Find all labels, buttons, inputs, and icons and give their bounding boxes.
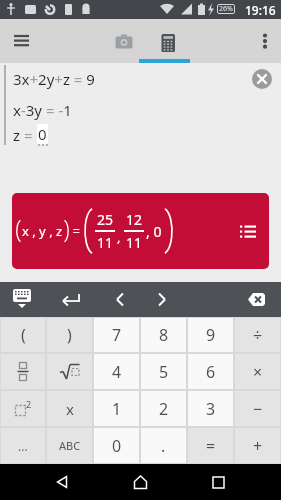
button[interactable] — [252, 69, 272, 89]
staticText: z = — [13, 125, 37, 145]
button[interactable]: 9 — [187, 317, 234, 353]
button[interactable]: × — [234, 353, 281, 390]
button[interactable] — [46, 353, 93, 390]
staticText: 0 — [38, 124, 47, 144]
staticText: × — [253, 361, 263, 383]
button[interactable] — [0, 282, 46, 317]
button[interactable]: 6 — [187, 353, 234, 390]
button[interactable]: = — [187, 427, 234, 464]
staticText: ABC — [59, 438, 81, 453]
staticText: . — [161, 435, 166, 457]
staticText: = — [206, 435, 216, 457]
staticText: ) — [67, 324, 72, 346]
staticText: x — [66, 399, 74, 419]
button[interactable] — [52, 282, 90, 317]
button[interactable] — [0, 353, 46, 390]
button[interactable]: + — [234, 427, 281, 464]
button[interactable]: . — [140, 427, 187, 464]
staticText: 11 — [97, 233, 114, 252]
staticText: 6 — [206, 361, 216, 383]
button[interactable] — [0, 19, 44, 63]
staticText: 11 — [126, 233, 143, 252]
button[interactable]: − — [234, 390, 281, 427]
staticText: 12 — [126, 210, 143, 229]
staticText: ... — [18, 438, 28, 454]
button[interactable]: 5 — [140, 353, 187, 390]
staticText: ( — [21, 324, 26, 346]
button[interactable]: x , y , z — [12, 193, 269, 269]
button[interactable]: 4 — [93, 353, 140, 390]
staticText: 4 — [112, 361, 122, 383]
button[interactable] — [241, 19, 281, 63]
staticText: 3x+2y+z = 9 — [13, 69, 95, 89]
button[interactable]: 3 — [187, 390, 234, 427]
button[interactable]: 7 — [93, 317, 140, 353]
button[interactable] — [100, 19, 148, 63]
staticText: 5 — [159, 361, 169, 383]
staticText: x-3y = -1 — [13, 100, 72, 120]
button[interactable]: 8 — [140, 317, 187, 353]
staticText: 2 — [159, 398, 169, 420]
button[interactable] — [235, 282, 281, 317]
staticText: x , y , z — [22, 222, 63, 240]
button[interactable] — [100, 282, 138, 317]
button[interactable]: 1 — [93, 390, 140, 427]
button[interactable]: ( — [0, 317, 46, 353]
button[interactable] — [199, 464, 237, 500]
staticText: , 0 — [146, 222, 162, 241]
staticText: + — [253, 435, 263, 457]
button[interactable]: 2 — [0, 390, 46, 427]
staticText: 1 — [112, 398, 122, 420]
button[interactable]: ÷ — [234, 317, 281, 353]
button[interactable] — [121, 464, 159, 500]
staticText: 7 — [112, 324, 122, 346]
button[interactable]: ABC — [46, 427, 93, 464]
button[interactable]: 2 — [140, 390, 187, 427]
staticText: 9 — [206, 324, 216, 346]
button[interactable] — [44, 464, 82, 500]
staticText: 19:16 — [245, 2, 276, 18]
staticText: , — [117, 228, 121, 246]
staticText: 25 — [97, 210, 114, 229]
button[interactable] — [143, 282, 181, 317]
staticText: 2 — [26, 398, 32, 410]
button[interactable]: 0 — [93, 427, 140, 464]
button[interactable] — [144, 19, 192, 63]
staticText: 3 — [206, 398, 216, 420]
staticText: 0 — [112, 435, 122, 457]
staticText: 26% — [219, 4, 233, 14]
staticText: − — [253, 398, 263, 420]
button[interactable]: x — [46, 390, 93, 427]
staticText: 8 — [159, 324, 169, 346]
staticText: = — [69, 222, 84, 240]
button[interactable]: ... — [0, 427, 46, 464]
button[interactable]: ) — [46, 317, 93, 353]
staticText: ÷ — [253, 324, 263, 346]
